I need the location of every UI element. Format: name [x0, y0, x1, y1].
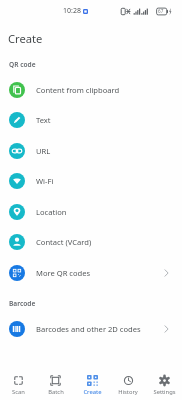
button[interactable]: Settings — [146, 366, 182, 400]
button[interactable]: More QR codes — [0, 257, 182, 288]
button[interactable]: History — [110, 366, 146, 400]
staticText: Contact (VCard) — [36, 237, 92, 247]
staticText: Scan — [12, 388, 25, 396]
staticText: Text — [36, 115, 51, 125]
button[interactable]: Contact (VCard) — [0, 226, 182, 257]
staticText: Location — [36, 207, 67, 217]
staticText: Content from clipboard — [36, 85, 120, 95]
staticText: QR code — [9, 60, 36, 69]
staticText: Wi-Fi — [36, 176, 54, 186]
staticText: Barcodes and other 2D codes — [36, 324, 141, 334]
button[interactable]: Text — [0, 104, 182, 135]
staticText: 67 — [158, 8, 164, 14]
button[interactable]: URL — [0, 135, 182, 166]
staticText: URL — [36, 146, 51, 156]
staticText: Create — [8, 31, 43, 46]
staticText: Settings — [153, 388, 176, 396]
button[interactable]: Batch — [37, 366, 74, 400]
staticText: Barcode — [9, 299, 36, 308]
button[interactable]: Location — [0, 196, 182, 227]
staticText: Batch — [48, 388, 64, 396]
staticText: 10:28 — [63, 6, 81, 16]
button[interactable]: Wi-Fi — [0, 165, 182, 196]
button[interactable]: Scan — [0, 366, 37, 400]
staticText: Create — [83, 388, 102, 396]
staticText: History — [118, 388, 138, 396]
staticText: More QR codes — [36, 268, 91, 278]
button[interactable]: Barcodes and other 2D codes — [0, 313, 182, 344]
button[interactable]: Content from clipboard — [0, 74, 182, 105]
button[interactable]: Create — [74, 366, 110, 400]
